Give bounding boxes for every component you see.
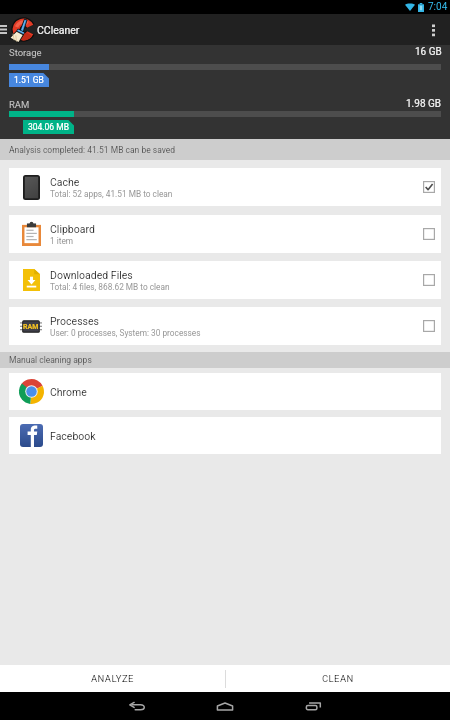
staticText: CLEAN [322,673,354,684]
staticText: 1 item [50,236,74,246]
staticText: Total: 4 files, 868.62 MB to clean [50,282,170,292]
staticText: Downloaded Files [50,269,133,281]
staticText: 7:04 [428,1,448,13]
staticText: CCleaner [37,24,80,36]
staticText: Total: 52 apps, 41.51 MB to clean [50,189,173,199]
staticText: Manual cleaning apps [9,355,92,365]
button[interactable]: Chrome [9,373,441,410]
button[interactable]: CLEAN [225,665,450,692]
button[interactable]: Open navigation drawer [0,14,10,45]
button[interactable]: Clipboard [9,215,441,253]
button[interactable]: Recent apps [291,692,335,720]
staticText: 1.51 GB [14,75,44,85]
staticText: 304.06 MB [28,122,69,132]
button[interactable]: Downloaded Files [9,261,441,299]
staticText: Chrome [50,386,87,398]
button[interactable]: Facebook [9,417,441,454]
button[interactable]: Home [203,692,247,720]
staticText: Analysis completed: 41.51 MB can be save… [9,145,176,155]
staticText: Cache [50,176,80,188]
staticText: Processes [50,315,99,327]
staticText: 16 GB [415,46,442,58]
button[interactable]: ANALYZE [0,665,225,692]
staticText: 1.98 GB [406,98,442,110]
staticText: User: 0 processes, System: 30 processes [50,328,201,338]
button[interactable]: RAM [9,307,441,345]
staticText: ANALYZE [91,673,134,684]
staticText: Facebook [50,430,96,442]
staticText: RAM [23,323,39,331]
button[interactable]: Cache [9,168,441,206]
staticText: Clipboard [50,223,95,235]
staticText: Storage [9,47,42,58]
button[interactable]: Back [115,692,159,720]
staticText: RAM [9,99,30,110]
button[interactable]: More options [420,14,446,45]
